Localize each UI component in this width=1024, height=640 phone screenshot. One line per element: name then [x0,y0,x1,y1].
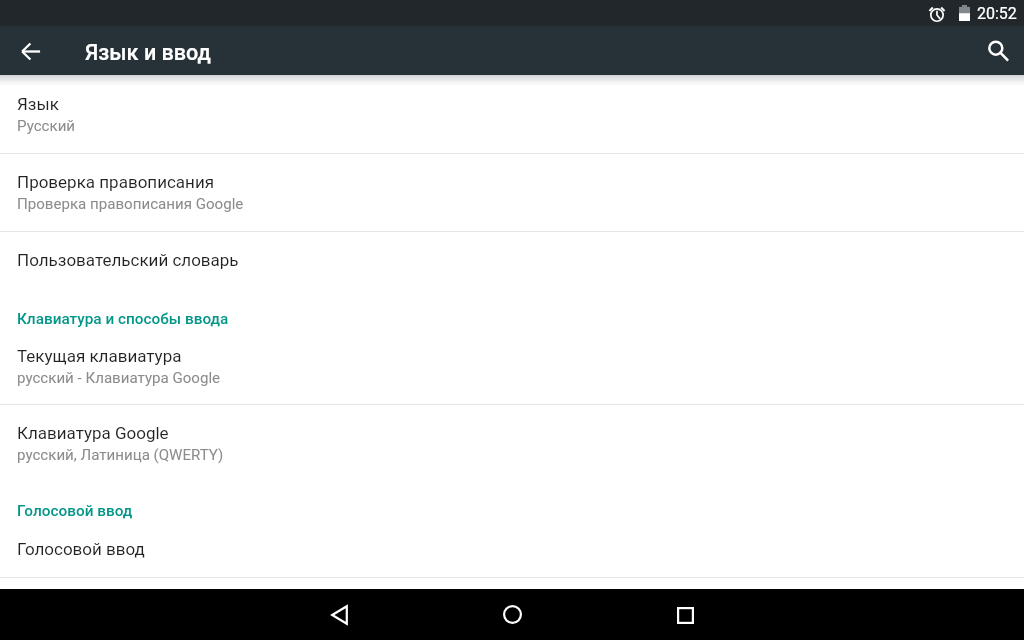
button[interactable]: Язык [0,75,1024,153]
button[interactable]: Клавиатура Google [0,405,1024,482]
button[interactable]: Назад [10,31,51,72]
staticText: Клавиатура Google [17,423,169,443]
button[interactable]: Обзор [661,591,709,639]
button[interactable]: Назад [315,591,363,639]
button[interactable]: Текущая клавиатура [0,329,1024,404]
staticText: Язык и ввод [85,40,211,65]
staticText: Клавиатура и способы ввода [17,310,229,328]
button[interactable]: Проверка правописания [0,154,1024,231]
staticText: Голосовой ввод [17,539,145,559]
staticText: Текущая клавиатура [17,346,182,366]
staticText: Голосовой ввод [17,502,133,520]
staticText: 20:52 [977,4,1017,23]
staticText: русский - Клавиатура Google [17,369,221,387]
staticText: Проверка правописания Google [17,195,244,213]
staticText: Проверка правописания [17,172,215,192]
staticText: Пользовательский словарь [17,250,239,270]
button[interactable]: Голосовой ввод [0,521,1024,577]
staticText: русский, Латиница (QWERTY) [17,446,224,464]
button[interactable]: Главный экран [488,591,536,639]
staticText: Язык [17,94,59,114]
staticText: Русский [17,117,76,135]
button[interactable]: Пользовательский словарь [0,232,1024,288]
button[interactable]: Поиск [974,27,1022,75]
